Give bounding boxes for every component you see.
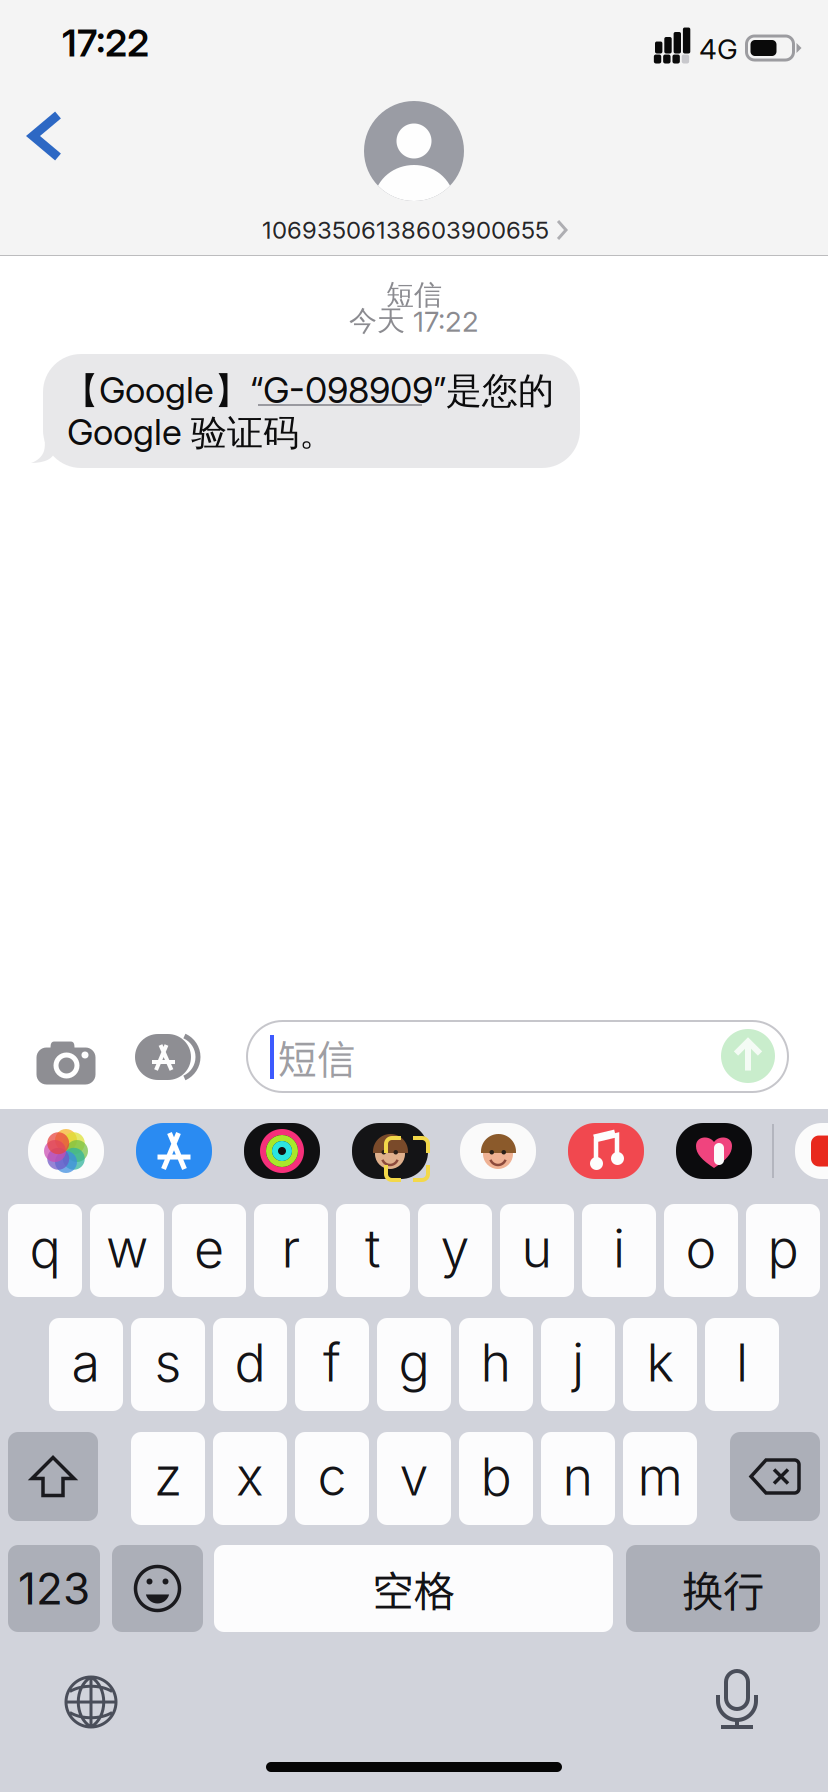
staticText: n <box>562 1445 593 1508</box>
button[interactable]: r <box>254 1204 328 1297</box>
staticText: v <box>399 1445 428 1508</box>
button[interactable]: Emoji <box>112 1545 203 1632</box>
button[interactable]: Camera <box>22 1013 110 1101</box>
staticText: 10693506138603900655 <box>262 215 549 244</box>
button[interactable]: Photos <box>28 1123 104 1179</box>
button[interactable]: Next keyboard <box>51 1662 131 1742</box>
staticText: q <box>29 1217 60 1280</box>
button[interactable]: Fitness <box>244 1123 320 1179</box>
button[interactable]: m <box>623 1432 697 1525</box>
button[interactable]: Memoji <box>352 1123 428 1179</box>
button[interactable]: 换行 <box>626 1545 820 1632</box>
button[interactable]: App Store <box>136 1123 212 1179</box>
staticText: 今天 17:22 <box>349 303 479 339</box>
button[interactable]: Dictation <box>697 1660 777 1740</box>
staticText: m <box>637 1445 682 1508</box>
button[interactable]: More apps <box>795 1123 828 1179</box>
button[interactable]: i <box>582 1204 656 1297</box>
button[interactable]: y <box>418 1204 492 1297</box>
staticText: w <box>106 1217 148 1280</box>
staticText: e <box>194 1217 224 1280</box>
button[interactable]: App Store <box>124 1013 212 1101</box>
button[interactable]: 10693506138603900655 <box>154 98 674 248</box>
staticText: b <box>480 1445 511 1508</box>
staticText: 短信 <box>386 277 442 313</box>
button[interactable]: v <box>377 1432 451 1525</box>
staticText: s <box>154 1331 181 1394</box>
staticText: 【Google】“G-098909”是您的 <box>63 368 554 414</box>
button[interactable]: q <box>8 1204 82 1297</box>
button[interactable]: a <box>49 1318 123 1411</box>
button[interactable]: f <box>295 1318 369 1411</box>
staticText: t <box>365 1217 381 1280</box>
staticText: r <box>281 1217 300 1280</box>
staticText: i <box>613 1217 625 1280</box>
staticText: y <box>440 1217 469 1280</box>
staticText: f <box>323 1331 341 1394</box>
button[interactable]: j <box>541 1318 615 1411</box>
staticText: j <box>572 1331 584 1394</box>
staticText: u <box>521 1217 552 1280</box>
staticText: o <box>685 1217 716 1280</box>
button[interactable]: Memoji stickers <box>460 1123 536 1179</box>
button[interactable]: Music <box>568 1123 644 1179</box>
button[interactable]: s <box>131 1318 205 1411</box>
button[interactable]: b <box>459 1432 533 1525</box>
button[interactable]: x <box>213 1432 287 1525</box>
button[interactable]: Health <box>676 1123 752 1179</box>
button[interactable]: g <box>377 1318 451 1411</box>
staticText: g <box>398 1331 429 1394</box>
staticText: 空格 <box>372 1559 454 1618</box>
button[interactable]: 123 <box>8 1545 100 1632</box>
button[interactable]: t <box>336 1204 410 1297</box>
staticText: 4G <box>699 32 738 66</box>
button[interactable]: Send <box>721 1029 775 1083</box>
staticText: h <box>480 1331 511 1394</box>
button[interactable]: h <box>459 1318 533 1411</box>
button[interactable]: z <box>131 1432 205 1525</box>
button[interactable]: u <box>500 1204 574 1297</box>
staticText: p <box>767 1217 798 1280</box>
staticText: 123 <box>18 1562 90 1615</box>
button[interactable]: p <box>746 1204 820 1297</box>
button[interactable]: l <box>705 1318 779 1411</box>
staticText: l <box>736 1331 748 1394</box>
button[interactable]: Back <box>0 88 92 184</box>
staticText: z <box>154 1445 182 1508</box>
staticText: a <box>71 1331 100 1394</box>
button[interactable]: k <box>623 1318 697 1411</box>
staticText: Google 验证码。 <box>67 410 335 456</box>
button[interactable]: o <box>664 1204 738 1297</box>
button[interactable]: w <box>90 1204 164 1297</box>
staticText: 17:22 <box>62 20 149 66</box>
button[interactable]: e <box>172 1204 246 1297</box>
button[interactable]: Delete <box>730 1432 820 1521</box>
staticText: k <box>646 1331 673 1394</box>
button[interactable]: d <box>213 1318 287 1411</box>
staticText: d <box>234 1331 265 1394</box>
staticText: x <box>236 1445 264 1508</box>
staticText: 换行 <box>682 1559 764 1618</box>
button[interactable]: 空格 <box>214 1545 613 1632</box>
button[interactable]: Shift <box>8 1432 98 1521</box>
button[interactable]: n <box>541 1432 615 1525</box>
button[interactable]: c <box>295 1432 369 1525</box>
staticText: c <box>317 1445 346 1508</box>
staticText: 短信 <box>278 1029 356 1085</box>
